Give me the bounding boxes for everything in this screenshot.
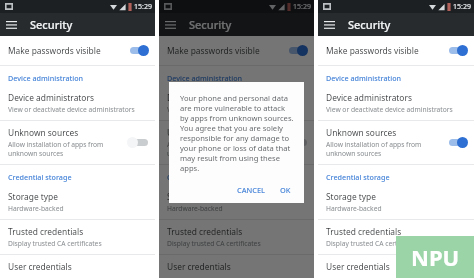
button[interactable]: User credentials: [0, 255, 155, 278]
staticText: Storage type: [8, 191, 58, 202]
button[interactable]: Storage type: [318, 188, 474, 219]
staticText: Hardware-backed: [167, 204, 223, 213]
staticText: User credentials: [326, 261, 390, 272]
button[interactable]: Device administrators: [318, 89, 474, 120]
button[interactable]: Unknown sources: [159, 121, 314, 164]
staticText: Storage type: [326, 191, 376, 202]
staticText: Security: [30, 17, 73, 32]
staticText: 15:29: [134, 2, 152, 12]
button[interactable]: CANCEL: [233, 182, 270, 198]
button[interactable]: Device administrators: [0, 89, 155, 120]
staticText: Device administration: [326, 73, 402, 83]
button[interactable]: Make passwords visible: [159, 36, 314, 65]
button[interactable]: Toggle on: [446, 136, 469, 149]
button[interactable]: Open navigation menu: [318, 13, 341, 36]
staticText: View or deactivate device administrators: [167, 105, 294, 114]
staticText: Device administrators: [8, 92, 94, 103]
button[interactable]: Trusted credentials: [159, 220, 314, 254]
staticText: Display trusted CA certificates: [326, 239, 420, 248]
button[interactable]: Credential storage: [318, 165, 474, 188]
button[interactable]: Unknown sources: [318, 121, 474, 164]
staticText: Allow installation of apps from unknown …: [326, 140, 442, 158]
staticText: Credential storage: [326, 172, 390, 182]
button[interactable]: Toggle off: [127, 136, 150, 149]
staticText: CANCEL: [237, 185, 266, 195]
staticText: Make passwords visible: [167, 45, 260, 56]
staticText: User credentials: [8, 261, 72, 272]
staticText: Trusted credentials: [167, 226, 243, 237]
staticText: Unknown sources: [167, 127, 238, 138]
button[interactable]: User credentials: [318, 255, 474, 278]
button[interactable]: Device administration: [159, 66, 314, 89]
staticText: Display trusted CA certificates: [8, 239, 102, 248]
staticText: Storage type: [167, 191, 217, 202]
staticText: View or deactivate device administrators: [326, 105, 453, 114]
button[interactable]: Trusted credentials: [0, 220, 155, 254]
staticText: Device administrators: [326, 92, 412, 103]
staticText: Allow installation of apps from unknown …: [167, 140, 282, 158]
staticText: Security: [348, 17, 391, 32]
button[interactable]: Device administration: [0, 66, 155, 89]
button[interactable]: Trusted credentials: [318, 220, 474, 254]
button[interactable]: Make passwords visible: [0, 36, 155, 65]
staticText: Hardware-backed: [326, 204, 382, 213]
staticText: 15:29: [293, 2, 311, 12]
staticText: User credentials: [167, 261, 231, 272]
button[interactable]: Toggle on: [286, 44, 309, 57]
button[interactable]: Device administration: [318, 66, 474, 89]
staticText: Credential storage: [8, 172, 72, 182]
staticText: View or deactivate device administrators: [8, 105, 135, 114]
staticText: Trusted credentials: [326, 226, 402, 237]
button[interactable]: Open navigation menu: [0, 13, 23, 36]
staticText: Display trusted CA certificates: [167, 239, 261, 248]
button[interactable]: User credentials: [159, 255, 314, 278]
button[interactable]: Device administrators: [159, 89, 314, 120]
staticText: Device administration: [8, 73, 84, 83]
button[interactable]: Credential storage: [159, 165, 314, 188]
button[interactable]: Toggle on: [127, 44, 150, 57]
button[interactable]: Unknown sources: [0, 121, 155, 164]
staticText: Device administration: [167, 73, 243, 83]
staticText: Hardware-backed: [8, 204, 64, 213]
staticText: Unknown sources: [8, 127, 79, 138]
staticText: Unknown sources: [326, 127, 397, 138]
button[interactable]: Storage type: [0, 188, 155, 219]
staticText: Your phone and personal data are more vu…: [180, 93, 295, 173]
staticText: Allow installation of apps from unknown …: [8, 140, 123, 158]
staticText: OK: [280, 185, 291, 195]
staticText: Make passwords visible: [326, 45, 419, 56]
button[interactable]: Open navigation menu: [159, 13, 182, 36]
button[interactable]: Storage type: [159, 188, 314, 219]
staticText: Make passwords visible: [8, 45, 101, 56]
button[interactable]: Toggle off: [286, 136, 309, 149]
staticText: 15:29: [453, 2, 471, 12]
button[interactable]: OK: [276, 182, 295, 198]
button[interactable]: Make passwords visible: [318, 36, 474, 65]
staticText: Trusted credentials: [8, 226, 84, 237]
staticText: Security: [189, 17, 232, 32]
staticText: Device administrators: [167, 92, 253, 103]
button[interactable]: Credential storage: [0, 165, 155, 188]
staticText: Credential storage: [167, 172, 231, 182]
staticText: NPU: [411, 242, 460, 272]
button[interactable]: Toggle on: [446, 44, 469, 57]
